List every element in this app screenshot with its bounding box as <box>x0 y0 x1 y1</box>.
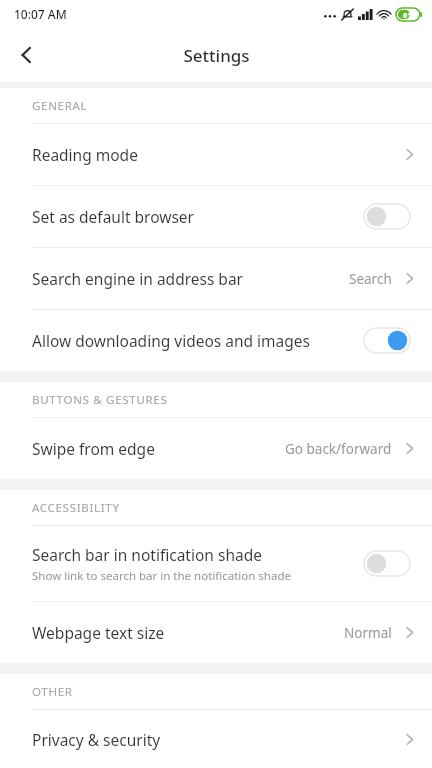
staticText: Settings <box>183 44 250 67</box>
button[interactable]: Webpage text size <box>0 602 432 663</box>
staticText: 61 <box>403 10 412 20</box>
button[interactable]: Toggle on <box>364 328 410 353</box>
staticText: Go back/forward <box>285 440 392 458</box>
button[interactable]: Reading mode <box>0 124 432 185</box>
staticText: Privacy & security <box>32 729 161 750</box>
button[interactable]: Toggle off <box>364 551 410 576</box>
staticText: 10:07 AM <box>14 6 67 22</box>
button[interactable]: Allow downloading videos and images <box>0 310 432 371</box>
button[interactable]: Privacy & security <box>0 710 432 768</box>
button[interactable]: Toggle off <box>364 204 410 229</box>
staticText: Reading mode <box>32 144 138 165</box>
staticText: Search <box>349 270 392 288</box>
button[interactable]: Search bar in notification shade <box>0 526 432 601</box>
staticText: OTHER <box>32 684 73 700</box>
staticText: ACCESSIBILITY <box>32 500 120 516</box>
staticText: Webpage text size <box>32 622 165 643</box>
button[interactable]: Back <box>4 32 50 78</box>
staticText: Swipe from edge <box>32 438 155 459</box>
staticText: Set as default browser <box>32 206 194 227</box>
button[interactable]: Set as default browser <box>0 186 432 247</box>
staticText: Show link to search bar in the notificat… <box>32 568 291 584</box>
staticText: Search bar in notification shade <box>32 544 262 565</box>
staticText: Search engine in address bar <box>32 268 244 289</box>
button[interactable]: Swipe from edge <box>0 418 432 479</box>
staticText: BUTTONS & GESTURES <box>32 392 168 408</box>
button[interactable]: Search engine in address bar <box>0 248 432 309</box>
staticText: Allow downloading videos and images <box>32 330 310 351</box>
staticText: Normal <box>344 624 392 642</box>
staticText: GENERAL <box>32 98 88 114</box>
